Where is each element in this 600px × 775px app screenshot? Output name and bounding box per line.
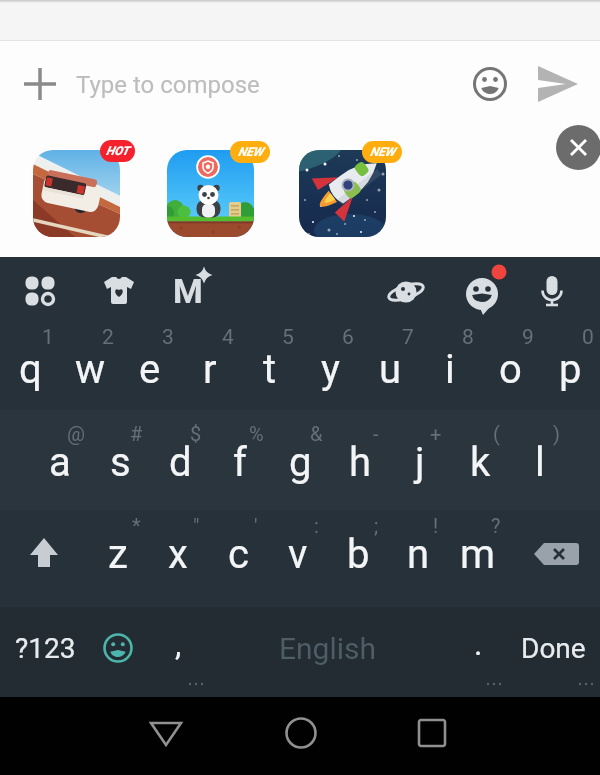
button[interactable] <box>456 268 508 320</box>
staticText: NEW <box>370 145 395 159</box>
staticText: u <box>379 346 402 393</box>
button[interactable]: q <box>0 334 60 404</box>
staticText: Type to compose <box>76 71 260 99</box>
staticText: w <box>75 346 106 393</box>
staticText: j <box>415 439 425 486</box>
button[interactable]: t <box>240 334 300 404</box>
staticText: 3 <box>162 325 174 350</box>
button[interactable]: M <box>158 261 218 321</box>
staticText: v <box>288 531 308 578</box>
staticText: 5 <box>282 325 294 350</box>
staticText: o <box>499 346 522 393</box>
button[interactable] <box>408 709 456 757</box>
button[interactable]: g <box>270 427 330 497</box>
button[interactable]: o <box>480 334 540 404</box>
button[interactable] <box>24 68 56 100</box>
staticText: : <box>314 514 319 537</box>
button[interactable]: p <box>540 334 600 404</box>
staticText: 7 <box>402 325 414 350</box>
staticText: p <box>559 346 582 393</box>
staticText: - <box>373 422 379 445</box>
button[interactable]: Type to compose <box>0 41 600 127</box>
staticText: . <box>474 625 483 663</box>
button[interactable]: ?123 <box>0 613 90 683</box>
button[interactable]: u <box>360 334 420 404</box>
button[interactable]: h <box>330 427 390 497</box>
staticText: l <box>535 439 545 486</box>
staticText: 4 <box>222 325 234 350</box>
staticText: b <box>347 531 370 578</box>
staticText: HOT <box>106 144 129 158</box>
staticText: t <box>263 346 277 393</box>
button[interactable] <box>556 125 600 170</box>
button[interactable]: z <box>88 519 148 589</box>
button[interactable] <box>528 269 576 317</box>
staticText: d <box>169 439 192 486</box>
button[interactable] <box>472 66 508 102</box>
button[interactable]: English <box>228 613 428 683</box>
staticText: M <box>173 271 203 311</box>
staticText: ) <box>553 422 560 445</box>
staticText: 9 <box>522 325 534 350</box>
button[interactable]: l <box>510 427 570 497</box>
button[interactable] <box>33 150 120 237</box>
staticText: ?123 <box>15 632 76 665</box>
button[interactable] <box>277 709 325 757</box>
staticText: 8 <box>462 325 474 350</box>
staticText: n <box>407 531 430 578</box>
staticText: 1 <box>42 325 54 350</box>
staticText: i <box>445 346 455 393</box>
staticText: 0 <box>582 325 594 350</box>
staticText: ! <box>433 514 439 537</box>
button[interactable]: , <box>148 609 208 679</box>
staticText: c <box>228 531 249 578</box>
staticText: a <box>49 439 71 486</box>
button[interactable] <box>167 150 254 237</box>
button[interactable]: v <box>268 519 328 589</box>
button[interactable] <box>299 150 386 237</box>
button[interactable] <box>382 268 430 316</box>
staticText: h <box>349 439 372 486</box>
staticText: ? <box>491 514 501 537</box>
staticText: y <box>321 346 340 393</box>
button[interactable]: c <box>208 519 268 589</box>
button[interactable] <box>16 267 64 315</box>
staticText: f <box>233 439 247 486</box>
button[interactable]: b <box>328 519 388 589</box>
staticText: $ <box>190 422 202 445</box>
button[interactable]: k <box>450 427 510 497</box>
button[interactable]: r <box>180 334 240 404</box>
staticText: English <box>279 631 377 666</box>
staticText: % <box>249 422 264 445</box>
button[interactable]: j <box>390 427 450 497</box>
staticText: ; <box>374 514 379 537</box>
button[interactable]: s <box>90 427 150 497</box>
staticText: + <box>430 422 442 445</box>
staticText: q <box>19 346 42 393</box>
button[interactable]: d <box>150 427 210 497</box>
staticText: " <box>193 514 200 537</box>
button[interactable] <box>142 709 190 757</box>
button[interactable] <box>100 630 136 666</box>
button[interactable]: Done <box>503 613 600 683</box>
staticText: , <box>175 625 182 663</box>
button[interactable] <box>20 530 68 578</box>
button[interactable]: a <box>30 427 90 497</box>
button[interactable]: x <box>148 519 208 589</box>
button[interactable]: w <box>60 334 120 404</box>
staticText: Done <box>521 632 586 665</box>
staticText: ( <box>493 422 500 445</box>
button[interactable] <box>532 530 582 580</box>
button[interactable]: n <box>388 519 448 589</box>
staticText: @ <box>67 422 85 445</box>
button[interactable] <box>95 267 143 315</box>
button[interactable]: i <box>420 334 480 404</box>
button[interactable]: e <box>120 334 180 404</box>
button[interactable]: . <box>448 609 508 679</box>
button[interactable]: y <box>300 334 360 404</box>
staticText: ' <box>254 514 258 537</box>
button[interactable] <box>536 64 580 104</box>
staticText: 2 <box>102 325 114 350</box>
button[interactable]: m <box>448 519 508 589</box>
button[interactable]: f <box>210 427 270 497</box>
